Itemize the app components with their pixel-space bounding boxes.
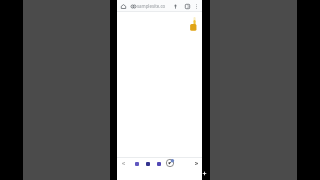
button[interactable]: Share to app 1	[135, 162, 139, 166]
button[interactable]: Share to app 2	[146, 162, 150, 166]
button[interactable]: Share	[166, 159, 174, 167]
button[interactable]: Tabs	[183, 2, 191, 10]
button[interactable]: Home	[119, 2, 127, 10]
button[interactable]: Previous	[120, 160, 126, 166]
staticText: samplesite.co	[137, 3, 166, 9]
button[interactable]: More options	[192, 2, 200, 10]
staticText: 3	[187, 4, 189, 9]
button[interactable]: Voice search	[171, 2, 179, 10]
button[interactable]: Share to app 3	[157, 162, 161, 166]
button[interactable]: Page info	[129, 2, 137, 10]
button[interactable]: Next	[193, 160, 199, 166]
